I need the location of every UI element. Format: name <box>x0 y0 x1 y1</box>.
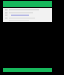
button[interactable] <box>3 8 52 22</box>
